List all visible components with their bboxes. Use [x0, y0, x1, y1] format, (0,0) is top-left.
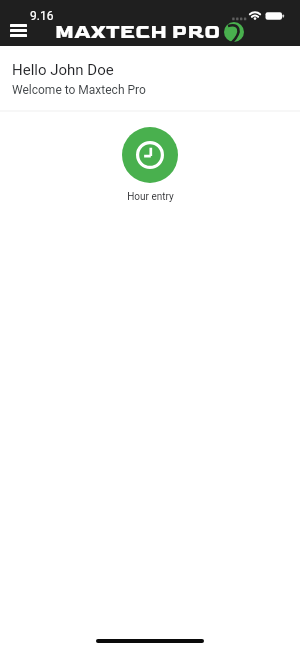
button[interactable]: Hour entry — [122, 127, 178, 203]
staticText: Hello John Doe — [12, 61, 114, 79]
staticText: 9.16 — [30, 9, 54, 23]
button[interactable]: Open navigation menu — [3, 17, 33, 43]
staticText: Hour entry — [127, 191, 174, 203]
staticText: Welcome to Maxtech Pro — [12, 83, 146, 97]
staticText: MAXTECH PRO — [55, 21, 221, 44]
